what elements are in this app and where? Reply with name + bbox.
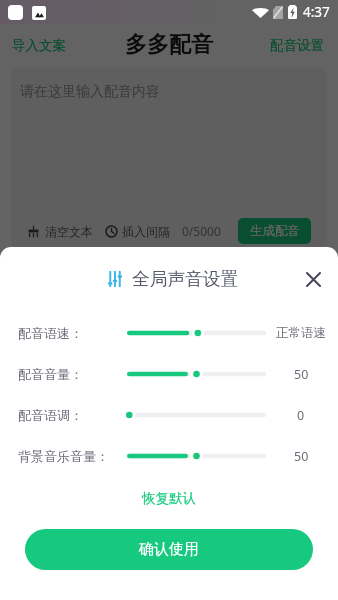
staticText: 4:37 xyxy=(303,3,330,21)
staticText: 插入间隔 xyxy=(122,224,170,239)
button[interactable]: 生成配音 xyxy=(238,218,311,244)
staticText: 配音语速： xyxy=(18,325,83,341)
staticText: 导入文案 xyxy=(12,37,66,54)
staticText: 确认使用 xyxy=(139,540,199,559)
button[interactable]: 确认使用 xyxy=(25,529,313,570)
staticText: 多多配音 xyxy=(125,31,213,59)
staticText: 0/5000 xyxy=(182,223,221,239)
staticText: 50 xyxy=(294,366,309,383)
staticText: 配音设置 xyxy=(270,37,324,54)
staticText: 全局声音设置 xyxy=(132,268,239,290)
button[interactable]: Close xyxy=(296,262,330,296)
staticText: 清空文本 xyxy=(45,224,93,239)
staticText: 背景音乐音量： xyxy=(18,448,109,464)
staticText: 生成配音 xyxy=(250,223,300,239)
staticText: 配音语调： xyxy=(18,407,83,423)
staticText: 请在这里输入配音内容 xyxy=(20,83,160,101)
staticText: 恢复默认 xyxy=(142,490,196,507)
staticText: 配音音量： xyxy=(18,366,83,382)
staticText: 0 xyxy=(297,407,305,424)
button[interactable]: 恢复默认 xyxy=(128,485,210,512)
staticText: 50 xyxy=(294,448,309,465)
staticText: 正常语速 xyxy=(276,325,326,341)
